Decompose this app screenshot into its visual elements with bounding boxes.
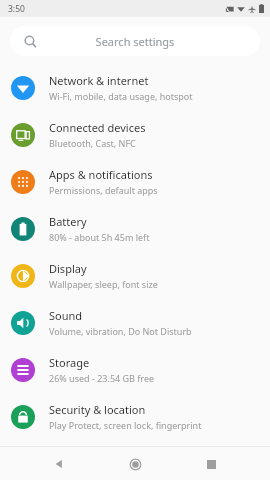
- staticText: Bluetooth, Cast, NFC: [49, 137, 136, 149]
- staticText: Volume, vibration, Do Not Disturb: [49, 325, 192, 337]
- button[interactable]: Back: [48, 453, 70, 475]
- button[interactable]: Network & internet: [0, 64, 270, 111]
- button[interactable]: Sound: [0, 299, 270, 346]
- staticText: Wallpaper, sleep, font size: [49, 278, 158, 290]
- button[interactable]: Security & location: [0, 393, 270, 440]
- staticText: Connected devices: [49, 120, 146, 135]
- staticText: Search settings: [10, 34, 260, 49]
- staticText: Storage: [49, 355, 90, 370]
- button[interactable]: Connected devices: [0, 111, 270, 158]
- staticText: 3:50: [8, 3, 25, 15]
- button[interactable]: Apps & notifications: [0, 158, 270, 205]
- button[interactable]: Display: [0, 252, 270, 299]
- staticText: 26% used - 23.54 GB free: [49, 372, 155, 384]
- staticText: Sound: [49, 308, 83, 323]
- staticText: Security & location: [49, 402, 146, 417]
- staticText: Battery: [49, 214, 87, 229]
- staticText: Play Protect, screen lock, fingerprint: [49, 419, 202, 431]
- staticText: Apps & notifications: [49, 167, 153, 182]
- staticText: Wi-Fi, mobile, data usage, hotspot: [49, 90, 193, 102]
- staticText: Display: [49, 261, 87, 276]
- button[interactable]: Search settings: [10, 26, 260, 56]
- staticText: Permissions, default apps: [49, 184, 158, 196]
- button[interactable]: Recents: [200, 453, 222, 475]
- staticText: 80% - about 5h 45m left: [49, 231, 150, 243]
- button[interactable]: Home: [124, 453, 146, 475]
- button[interactable]: Battery: [0, 205, 270, 252]
- staticText: Network & internet: [49, 73, 149, 88]
- button[interactable]: Storage: [0, 346, 270, 393]
